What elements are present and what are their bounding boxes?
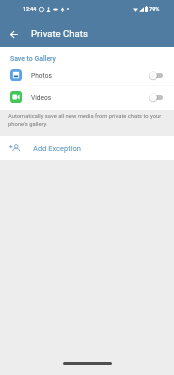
staticText: 79% (149, 6, 160, 13)
staticText: 12:44 (23, 6, 37, 12)
button[interactable]: Photos (0, 64, 174, 86)
staticText: Videos (31, 94, 52, 102)
staticText: Add Exception (33, 144, 81, 153)
button[interactable]: Back (0, 18, 27, 47)
staticText: Save to Gallery (10, 55, 56, 63)
staticText: Private Chats (31, 28, 88, 39)
button[interactable]: Add Exception (0, 136, 174, 160)
staticText: Automatically save all new media from pr… (8, 113, 166, 127)
button[interactable]: Videos (0, 86, 174, 108)
staticText: Photos (31, 72, 52, 80)
